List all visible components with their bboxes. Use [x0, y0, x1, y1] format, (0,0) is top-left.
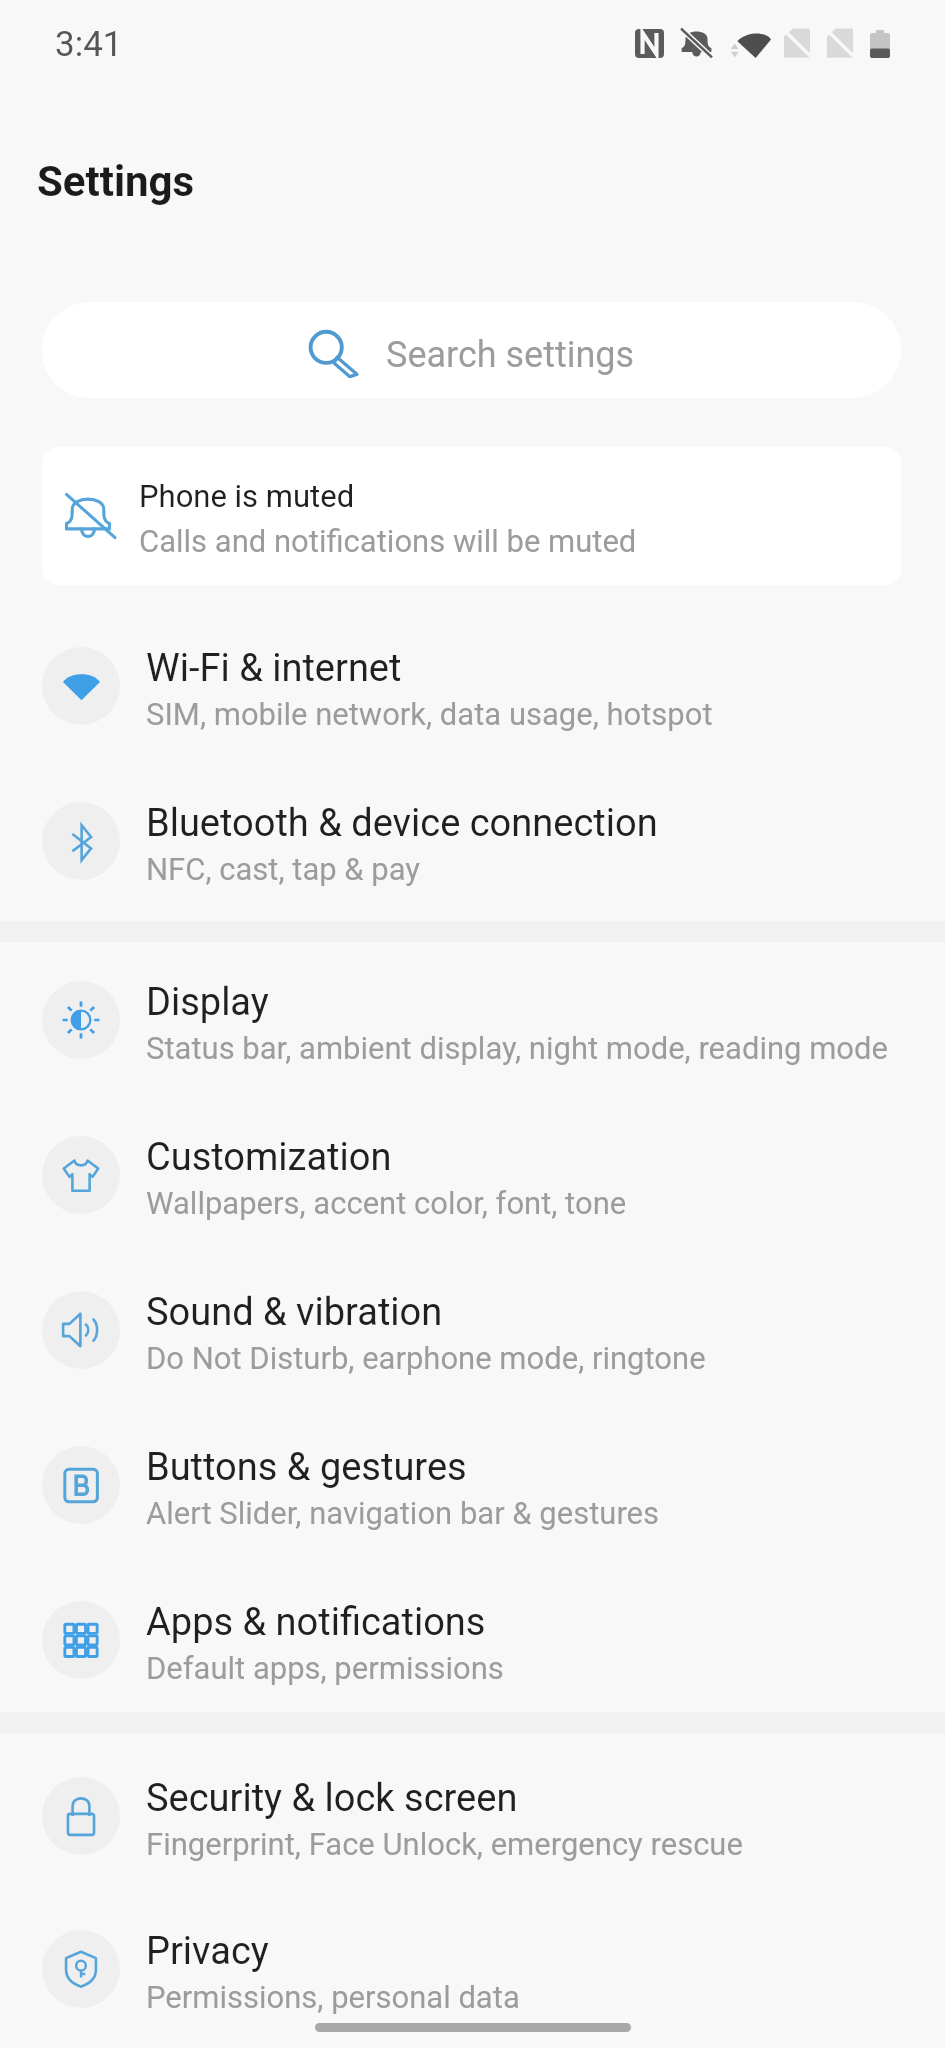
staticText: Phone is muted: [139, 478, 355, 514]
button[interactable]: Display: [0, 945, 945, 1100]
button[interactable]: Security & lock screen: [0, 1741, 945, 1896]
staticText: SIM, mobile network, data usage, hotspot: [146, 696, 713, 732]
staticText: Do Not Disturb, earphone mode, ringtone: [146, 1340, 706, 1376]
staticText: Permissions, personal data: [146, 1979, 520, 2015]
staticText: Calls and notifications will be muted: [139, 523, 637, 559]
staticText: Customization: [146, 1135, 392, 1180]
button[interactable]: Privacy: [0, 1896, 945, 2048]
staticText: Display: [146, 980, 269, 1025]
button[interactable]: Wi-Fi & internet: [0, 611, 945, 766]
staticText: Fingerprint, Face Unlock, emergency resc…: [146, 1826, 743, 1862]
staticText: Wallpapers, accent color, font, tone: [146, 1185, 627, 1221]
staticText: Privacy: [146, 1929, 269, 1974]
staticText: Security & lock screen: [146, 1776, 518, 1821]
button[interactable]: Sound & vibration: [0, 1255, 945, 1410]
staticText: Search settings: [386, 334, 635, 376]
staticText: NFC, cast, tap & pay: [146, 851, 421, 887]
button[interactable]: Apps & notifications: [0, 1565, 945, 1720]
staticText: Apps & notifications: [146, 1600, 486, 1645]
staticText: Alert Slider, navigation bar & gestures: [146, 1495, 660, 1531]
button[interactable]: Search settings: [42, 302, 901, 398]
staticText: Sound & vibration: [146, 1290, 443, 1335]
button[interactable]: Customization: [0, 1100, 945, 1255]
staticText: Buttons & gestures: [146, 1445, 467, 1490]
staticText: Default apps, permissions: [146, 1650, 504, 1686]
staticText: Status bar, ambient display, night mode,…: [146, 1030, 888, 1066]
button[interactable]: Bluetooth & device connection: [0, 766, 945, 921]
button[interactable]: Phone is muted: [42, 447, 901, 585]
staticText: 3:41: [55, 24, 123, 65]
staticText: Settings: [37, 157, 195, 206]
button[interactable]: Buttons & gestures: [0, 1410, 945, 1565]
staticText: Bluetooth & device connection: [146, 801, 658, 846]
staticText: Wi-Fi & internet: [146, 646, 402, 691]
